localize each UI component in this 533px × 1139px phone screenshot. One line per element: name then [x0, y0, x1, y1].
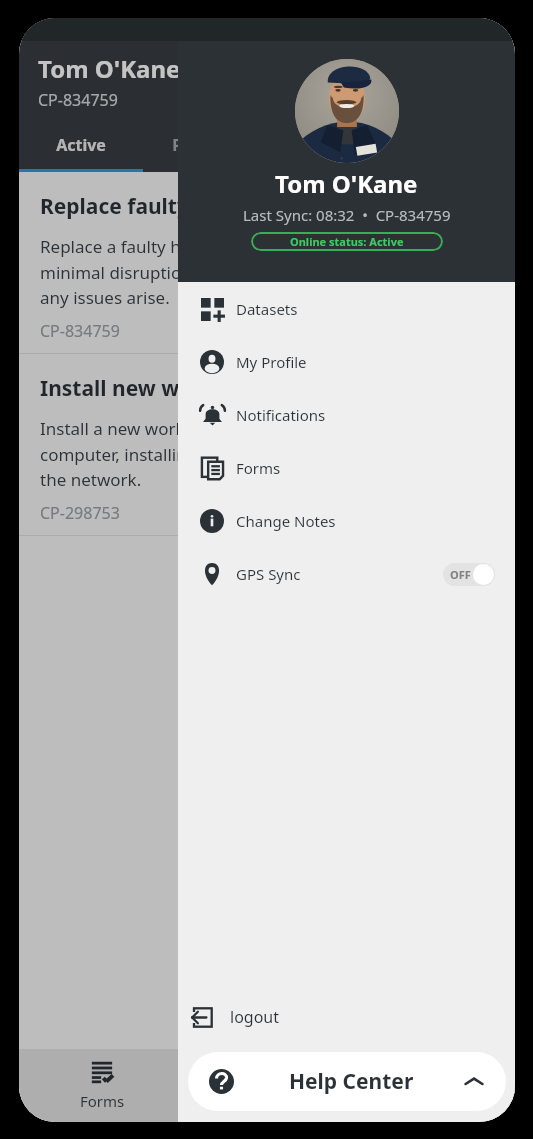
- staticText: Help Center: [289, 1067, 414, 1096]
- staticText: Notifications: [236, 405, 326, 425]
- button[interactable]: Change Notes: [178, 494, 515, 547]
- staticText: Change Notes: [236, 511, 336, 531]
- button[interactable]: My Profile: [178, 335, 515, 388]
- staticText: Replace a faulty hard drive with minimal…: [40, 235, 291, 309]
- staticText: Install a new workstation with a compute…: [40, 417, 297, 491]
- staticText: Forms: [80, 1091, 125, 1111]
- staticText: Install new workstation: [40, 374, 290, 403]
- button[interactable]: Replace faulty hardware: [19, 172, 515, 353]
- staticText: My Profile: [236, 352, 307, 372]
- staticText: GPS Sync: [236, 564, 301, 584]
- button[interactable]: Help Center: [188, 1052, 506, 1111]
- staticText: Last Sync: 08:32 • CP-834759: [243, 205, 451, 225]
- button[interactable]: Notifications: [178, 388, 515, 441]
- button[interactable]: Forms: [19, 1049, 185, 1122]
- button[interactable]: Datasets: [178, 282, 515, 335]
- staticText: Pending: [172, 134, 238, 156]
- button[interactable]: Sync: [350, 1049, 515, 1122]
- staticText: Online status: Active: [290, 234, 404, 249]
- staticText: Active: [56, 134, 106, 156]
- staticText: CP-834759: [38, 89, 118, 111]
- staticText: CP-834759: [40, 320, 120, 342]
- staticText: OFF: [450, 567, 471, 582]
- button[interactable]: Pending: [143, 134, 267, 156]
- button[interactable]: GPS Sync toggle, off: [443, 561, 495, 587]
- staticText: Forms: [236, 458, 281, 478]
- button[interactable]: GPS Sync: [178, 547, 515, 600]
- staticText: Tom O'Kane: [275, 167, 418, 200]
- staticText: Replace faulty hardware: [40, 192, 295, 221]
- button[interactable]: Tasks: [185, 1049, 350, 1122]
- button[interactable]: Forms: [178, 441, 515, 494]
- button[interactable]: logout: [178, 994, 515, 1040]
- other: Collapse: [464, 1072, 484, 1092]
- staticText: Done: [308, 134, 350, 156]
- button[interactable]: Done: [267, 134, 391, 156]
- staticText: Tom O'Kane: [38, 52, 181, 85]
- staticText: logout: [230, 1006, 279, 1028]
- button[interactable]: Active: [19, 134, 143, 156]
- button[interactable]: Install new workstation: [19, 354, 515, 535]
- staticText: Datasets: [236, 299, 298, 319]
- staticText: CP-298753: [40, 502, 120, 524]
